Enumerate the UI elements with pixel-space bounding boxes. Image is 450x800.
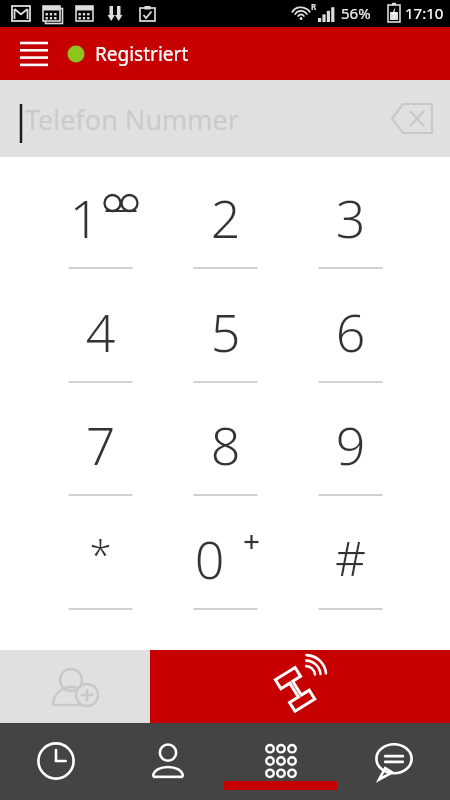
button[interactable]: 2 — [163, 170, 288, 283]
staticText: 4 — [38, 296, 163, 367]
button[interactable]: 1 — [38, 170, 163, 283]
button[interactable]: 9 — [288, 397, 413, 510]
button[interactable]: Menu — [10, 35, 58, 73]
staticText: 7 — [38, 409, 163, 480]
button[interactable]: Backspace — [382, 95, 438, 143]
staticText: 17:10 — [405, 3, 444, 23]
button[interactable]: 4 — [38, 284, 163, 397]
button[interactable]: 6 — [288, 284, 413, 397]
staticText: 8 — [163, 409, 288, 480]
staticText: 0 — [147, 523, 272, 594]
button[interactable]: Contacts — [112, 723, 224, 800]
button[interactable]: 8 — [163, 397, 288, 510]
button[interactable]: Telefon Nummer — [0, 80, 450, 157]
button[interactable]: 3 — [288, 170, 413, 283]
button[interactable]: Add contact — [0, 650, 150, 723]
staticText: 2 — [163, 182, 288, 253]
staticText: 6 — [288, 296, 413, 367]
staticText: 9 — [288, 409, 413, 480]
staticText: Telefon Nummer — [25, 101, 239, 138]
button[interactable]: # — [288, 511, 413, 624]
button[interactable]: Dialpad — [224, 723, 337, 800]
button[interactable]: Messages — [337, 723, 450, 800]
staticText: 5 — [163, 296, 288, 367]
staticText: # — [288, 525, 413, 590]
button[interactable]: Recents — [0, 723, 112, 800]
button[interactable]: 5 — [163, 284, 288, 397]
staticText: Registriert — [95, 41, 189, 67]
button[interactable]: * — [38, 511, 163, 624]
staticText: 56% — [341, 3, 371, 23]
staticText: 1 — [22, 182, 147, 253]
staticText: 3 — [288, 182, 413, 253]
button[interactable]: 7 — [38, 397, 163, 510]
staticText: * — [38, 527, 163, 581]
button[interactable]: Call — [150, 650, 450, 723]
staticText: R — [311, 1, 317, 12]
button[interactable]: 0 — [163, 511, 288, 624]
